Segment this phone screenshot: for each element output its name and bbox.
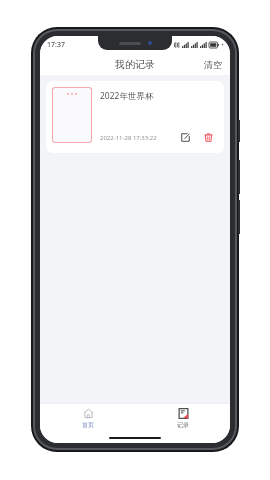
staticText: 17:37 [47, 40, 65, 50]
button[interactable]: Delete [201, 130, 216, 145]
staticText: 我的记录 [115, 58, 155, 71]
staticText: 2022-11-28 17:33:22 [100, 134, 157, 142]
button[interactable]: 2022年世界杯 [46, 81, 224, 153]
staticText: + [221, 41, 225, 49]
staticText: 首页 [82, 421, 94, 429]
button[interactable]: Home [70, 406, 106, 431]
staticText: 2022年世界杯 [100, 90, 154, 102]
staticText: 清空 [204, 59, 222, 70]
button[interactable]: 清空 [196, 56, 230, 73]
other: Records [178, 408, 189, 419]
button[interactable]: Edit [178, 130, 193, 145]
button[interactable]: Records [165, 406, 201, 431]
staticText: 记录 [177, 421, 189, 429]
other: Home [83, 408, 94, 419]
